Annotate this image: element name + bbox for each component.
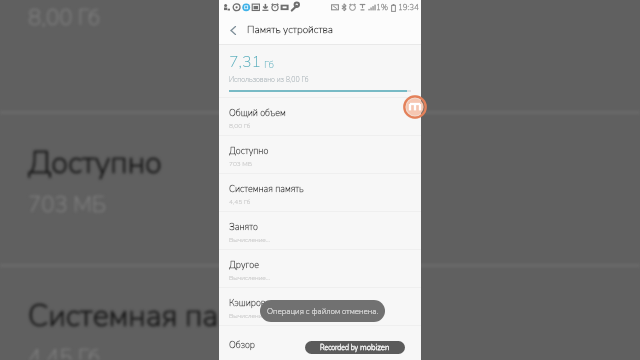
staticText: 8,00 Гб <box>28 3 100 33</box>
staticText: Доступно <box>229 145 269 157</box>
button[interactable]: Кэшированные данные <box>219 288 421 325</box>
staticText: Использовано из 8,00 Гб <box>229 75 309 85</box>
staticText: Общий объем <box>229 107 286 119</box>
button[interactable]: Обзор <box>219 326 421 360</box>
staticText: Recorded by <box>320 343 360 353</box>
staticText: 703 МБ <box>229 159 253 168</box>
button[interactable]: Общий объем <box>219 98 421 135</box>
staticText: Вычисление... <box>229 311 270 320</box>
staticText: Кэшированные данные <box>229 297 325 309</box>
button[interactable]: Другое <box>219 250 421 287</box>
staticText: Операция с файлом отменена. <box>267 306 379 317</box>
staticText: 19:34 <box>398 2 419 13</box>
staticText: Обзор <box>229 339 256 351</box>
staticText: Вычисление... <box>229 235 270 244</box>
staticText: Другое <box>229 259 259 271</box>
staticText: mobizen <box>360 342 390 353</box>
button[interactable]: Занято <box>219 212 421 249</box>
staticText: 1% <box>376 2 389 13</box>
staticText: 7,31 <box>229 51 262 73</box>
staticText: Системная память <box>229 183 304 195</box>
staticText: 703 МБ <box>28 190 107 220</box>
staticText: 8,00 Гб <box>229 121 251 130</box>
staticText: Доступно <box>28 142 162 184</box>
staticText: Гб <box>264 58 275 72</box>
staticText: 4,45 Гб <box>28 343 100 360</box>
button[interactable]: Back <box>219 16 247 44</box>
staticText: Системная па <box>28 295 219 337</box>
staticText: Занято <box>229 221 258 233</box>
button[interactable]: Доступно <box>219 136 421 173</box>
staticText: 4,45 Гб <box>229 197 251 206</box>
staticText: Память устройства <box>247 23 334 37</box>
button[interactable]: Системная память <box>219 174 421 211</box>
staticText: Вычисление... <box>229 273 270 282</box>
